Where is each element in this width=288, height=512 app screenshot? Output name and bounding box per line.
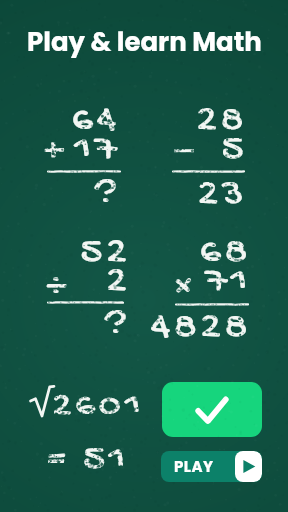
- staticText: Play & learn Math: [27, 24, 262, 60]
- staticText: 71: [34, 260, 251, 512]
- staticText: = 51: [47, 438, 129, 482]
- staticText: 68: [34, 231, 251, 512]
- staticText: +: [44, 130, 68, 174]
- staticText: ×: [173, 266, 197, 310]
- staticText: 5: [30, 128, 247, 512]
- staticText: −: [172, 124, 200, 174]
- staticText: 2: [0, 260, 130, 512]
- staticText: 23: [30, 173, 247, 512]
- staticText: 2601: [52, 386, 144, 427]
- staticText: 17: [0, 128, 120, 512]
- staticText: 64: [0, 99, 120, 512]
- staticText: ÷: [46, 266, 70, 310]
- staticText: ?: [0, 173, 120, 512]
- staticText: 4828: [34, 306, 251, 512]
- staticText: 52: [0, 231, 130, 512]
- staticText: PLAY: [174, 456, 214, 477]
- staticText: 28: [30, 99, 247, 512]
- staticText: ?: [0, 304, 130, 512]
- button[interactable]: Check answer: [162, 382, 262, 437]
- button[interactable]: PLAY: [161, 451, 262, 482]
